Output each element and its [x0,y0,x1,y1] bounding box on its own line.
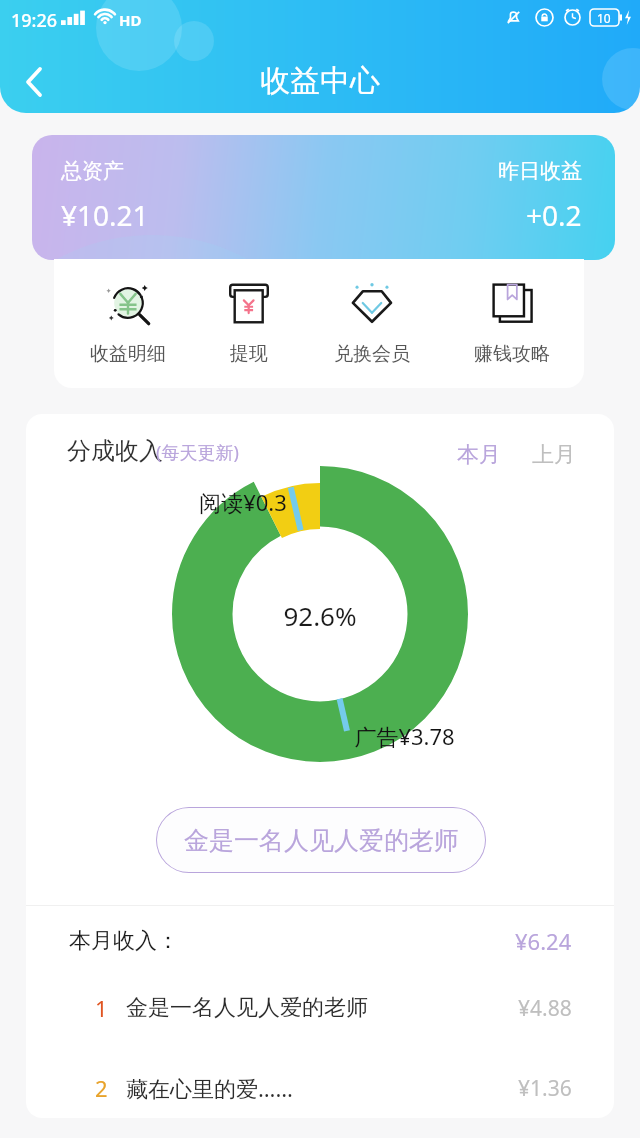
staticText: 广告¥3.78 [354,721,455,751]
button[interactable]: 兑换会员 [317,281,427,366]
staticText: 收益明细 [90,342,166,366]
staticText: ¥6.24 [515,926,572,956]
staticText: 92.6% [283,598,357,633]
staticText: 总资产 [61,158,124,184]
staticText: 2 [95,1073,108,1103]
button[interactable]: 上月 [532,441,576,469]
staticText: 本月 [457,441,501,469]
button[interactable]: 金是一名人见人爱的老师 [156,807,486,873]
button[interactable]: 提现 [194,281,304,366]
staticText: 上月 [532,441,576,469]
button[interactable]: 本月 [457,441,501,469]
staticText: HD [119,10,142,30]
staticText: 收益中心 [260,62,380,100]
staticText: 昨日收益 [498,158,582,184]
staticText: 分成收入 [67,436,163,466]
button[interactable]: 赚钱攻略 [457,281,567,366]
button[interactable]: 总资产 [32,135,615,260]
staticText: 阅读¥0.3 [199,487,287,517]
button[interactable]: 收益明细 [73,281,183,366]
staticText: 10 [597,10,611,26]
staticText: 藏在心里的爱…… [126,1073,293,1103]
staticText: ¥1.36 [518,1074,572,1103]
button[interactable]: 1 [95,975,572,1041]
staticText: 金是一名人见人爱的老师 [126,994,368,1022]
staticText: 兑换会员 [334,342,410,366]
staticText: ¥10.21 [61,196,149,234]
staticText: 1 [95,993,108,1023]
staticText: 19:26 [11,8,58,33]
button[interactable]: 2 [95,1055,572,1118]
button[interactable]: Back [7,55,61,109]
staticText: 本月收入： [69,927,179,955]
staticText: ¥4.88 [518,994,572,1023]
staticText: 金是一名人见人爱的老师 [184,825,459,856]
staticText: +0.2 [526,196,582,234]
staticText: 赚钱攻略 [474,342,550,366]
staticText: 提现 [230,342,268,366]
staticText: (每天更新) [156,440,239,465]
